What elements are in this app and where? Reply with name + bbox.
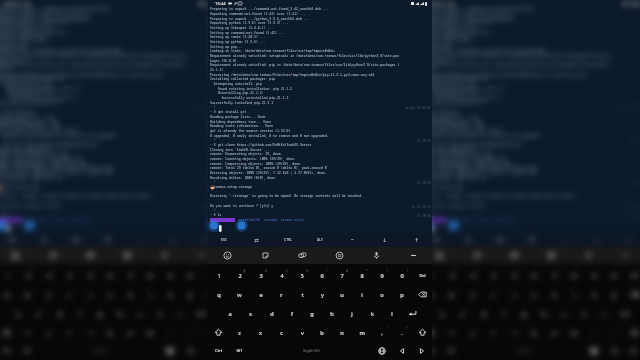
button[interactable]: 7 xyxy=(544,266,564,285)
button[interactable]: Move cursor left xyxy=(392,342,412,360)
button[interactable]: 5 xyxy=(292,266,312,285)
button[interactable]: m xyxy=(564,323,584,342)
button[interactable]: 8 xyxy=(140,266,160,285)
button[interactable]: Del xyxy=(412,266,432,285)
button[interactable]: Switch keyboard xyxy=(584,342,604,360)
button[interactable]: h xyxy=(534,304,554,323)
button[interactable]: b xyxy=(312,323,332,342)
button[interactable]: 9 xyxy=(372,266,392,285)
button[interactable]: x xyxy=(250,323,271,342)
button[interactable]: Emoji xyxy=(208,247,246,264)
button[interactable]: 4 xyxy=(271,266,292,285)
button[interactable]: Sticker xyxy=(34,247,72,264)
button[interactable]: Del xyxy=(200,266,220,285)
button[interactable]: x xyxy=(250,323,271,342)
button[interactable]: j xyxy=(130,304,150,323)
button[interactable]: Clipboard xyxy=(284,247,321,264)
button[interactable]: . xyxy=(392,323,412,342)
button[interactable]: Ctrl xyxy=(420,342,441,360)
button[interactable]: 7 xyxy=(120,266,140,285)
button[interactable]: Emoji xyxy=(208,247,246,264)
button[interactable]: Del xyxy=(624,266,640,285)
button[interactable]: 8 xyxy=(564,266,584,285)
button[interactable]: t xyxy=(292,285,312,304)
button[interactable]: Settings xyxy=(321,247,358,264)
button[interactable]: Move cursor right xyxy=(624,342,640,360)
button[interactable]: o xyxy=(372,285,392,304)
button[interactable]: Sticker xyxy=(458,247,496,264)
button[interactable]: s xyxy=(452,304,473,323)
button[interactable]: Move cursor right xyxy=(412,342,432,360)
button[interactable]: Switch keyboard xyxy=(160,342,180,360)
button[interactable]: y xyxy=(312,285,332,304)
button[interactable]: 2 xyxy=(229,266,250,285)
button[interactable]: f xyxy=(282,304,302,323)
button[interactable]: y xyxy=(312,285,332,304)
button[interactable]: ⇄ xyxy=(240,232,272,247)
button[interactable]: q xyxy=(420,285,441,304)
button[interactable]: r xyxy=(271,285,292,304)
button[interactable] xyxy=(190,304,210,323)
button[interactable]: Voice input xyxy=(570,247,607,264)
button[interactable]: v xyxy=(292,323,312,342)
button[interactable]: y xyxy=(524,285,544,304)
button[interactable]: 9 xyxy=(372,266,392,285)
button[interactable] xyxy=(402,304,422,323)
button[interactable]: w xyxy=(17,285,38,304)
button[interactable]: 1 xyxy=(420,266,441,285)
button[interactable]: f xyxy=(70,304,90,323)
button[interactable]: ALT xyxy=(92,232,124,247)
button[interactable]: ESC xyxy=(208,232,240,247)
button[interactable] xyxy=(208,323,229,342)
button[interactable]: 3 xyxy=(38,266,59,285)
button[interactable]: o xyxy=(160,285,180,304)
button[interactable]: Settings xyxy=(109,247,146,264)
button[interactable]: ESC xyxy=(208,232,240,247)
button[interactable]: p xyxy=(180,285,200,304)
button[interactable]: k xyxy=(362,304,382,323)
button[interactable]: c xyxy=(271,323,292,342)
button[interactable]: k xyxy=(150,304,170,323)
button[interactable]: 2 xyxy=(229,266,250,285)
button[interactable]: a xyxy=(431,304,452,323)
button[interactable]: Move cursor right xyxy=(200,342,220,360)
button[interactable]: CTRL xyxy=(60,232,92,247)
button[interactable]: g xyxy=(302,304,322,323)
button[interactable] xyxy=(402,304,422,323)
button[interactable]: CTRL xyxy=(272,232,304,247)
button[interactable]: z xyxy=(229,323,250,342)
button[interactable]: z xyxy=(441,323,462,342)
button[interactable] xyxy=(200,323,220,342)
button[interactable]: k xyxy=(362,304,382,323)
button[interactable]: Clipboard xyxy=(72,247,109,264)
button[interactable]: b xyxy=(100,323,120,342)
button[interactable]: Voice input xyxy=(146,247,183,264)
button[interactable]: ⇄ xyxy=(452,232,484,247)
button[interactable]: g xyxy=(90,304,110,323)
button[interactable]: g xyxy=(302,304,322,323)
button[interactable] xyxy=(208,323,229,342)
button[interactable]: l xyxy=(382,304,402,323)
button[interactable]: x xyxy=(38,323,59,342)
button[interactable]: 2 xyxy=(17,266,38,285)
button[interactable]: f xyxy=(494,304,514,323)
button[interactable]: g xyxy=(514,304,534,323)
button[interactable]: More options xyxy=(395,247,432,264)
button[interactable]: r xyxy=(271,285,292,304)
button[interactable]: 1 xyxy=(208,266,229,285)
button[interactable]: n xyxy=(332,323,352,342)
button[interactable] xyxy=(624,323,640,342)
button[interactable]: ↑ xyxy=(612,232,640,247)
button[interactable]: CTRL xyxy=(484,232,516,247)
button[interactable]: Settings xyxy=(321,247,358,264)
button[interactable]: 6 xyxy=(312,266,332,285)
button[interactable]: Voice input xyxy=(358,247,395,264)
